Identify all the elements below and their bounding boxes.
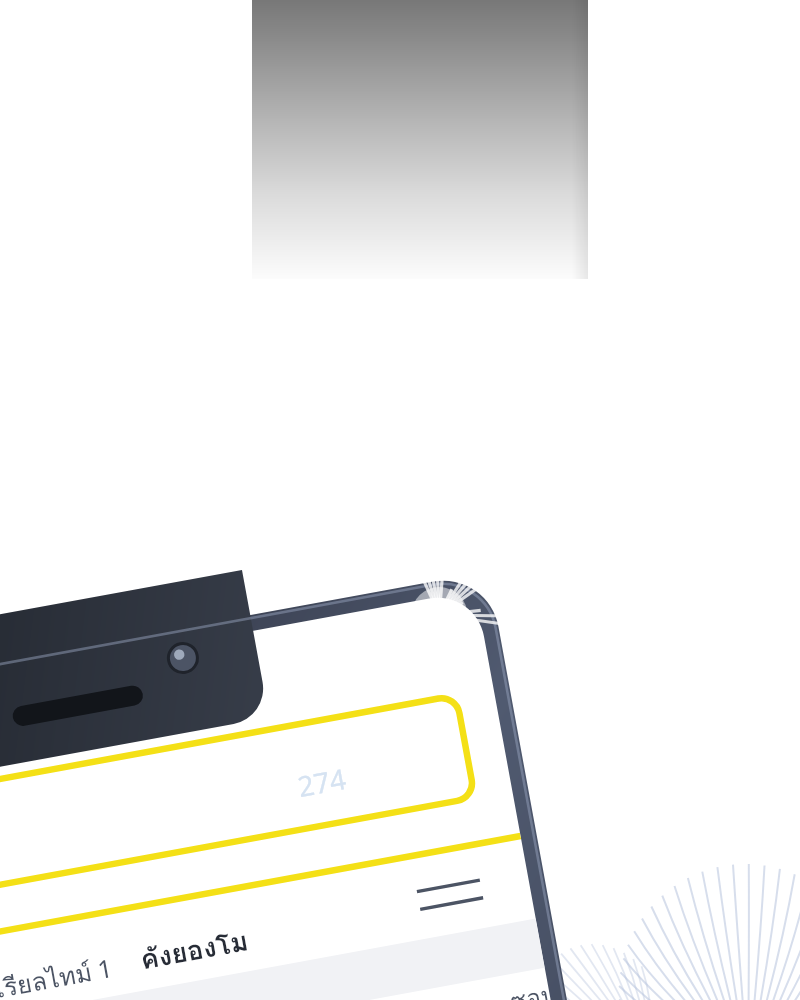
button[interactable]: Phone mockup promotional image [0, 0, 800, 1000]
